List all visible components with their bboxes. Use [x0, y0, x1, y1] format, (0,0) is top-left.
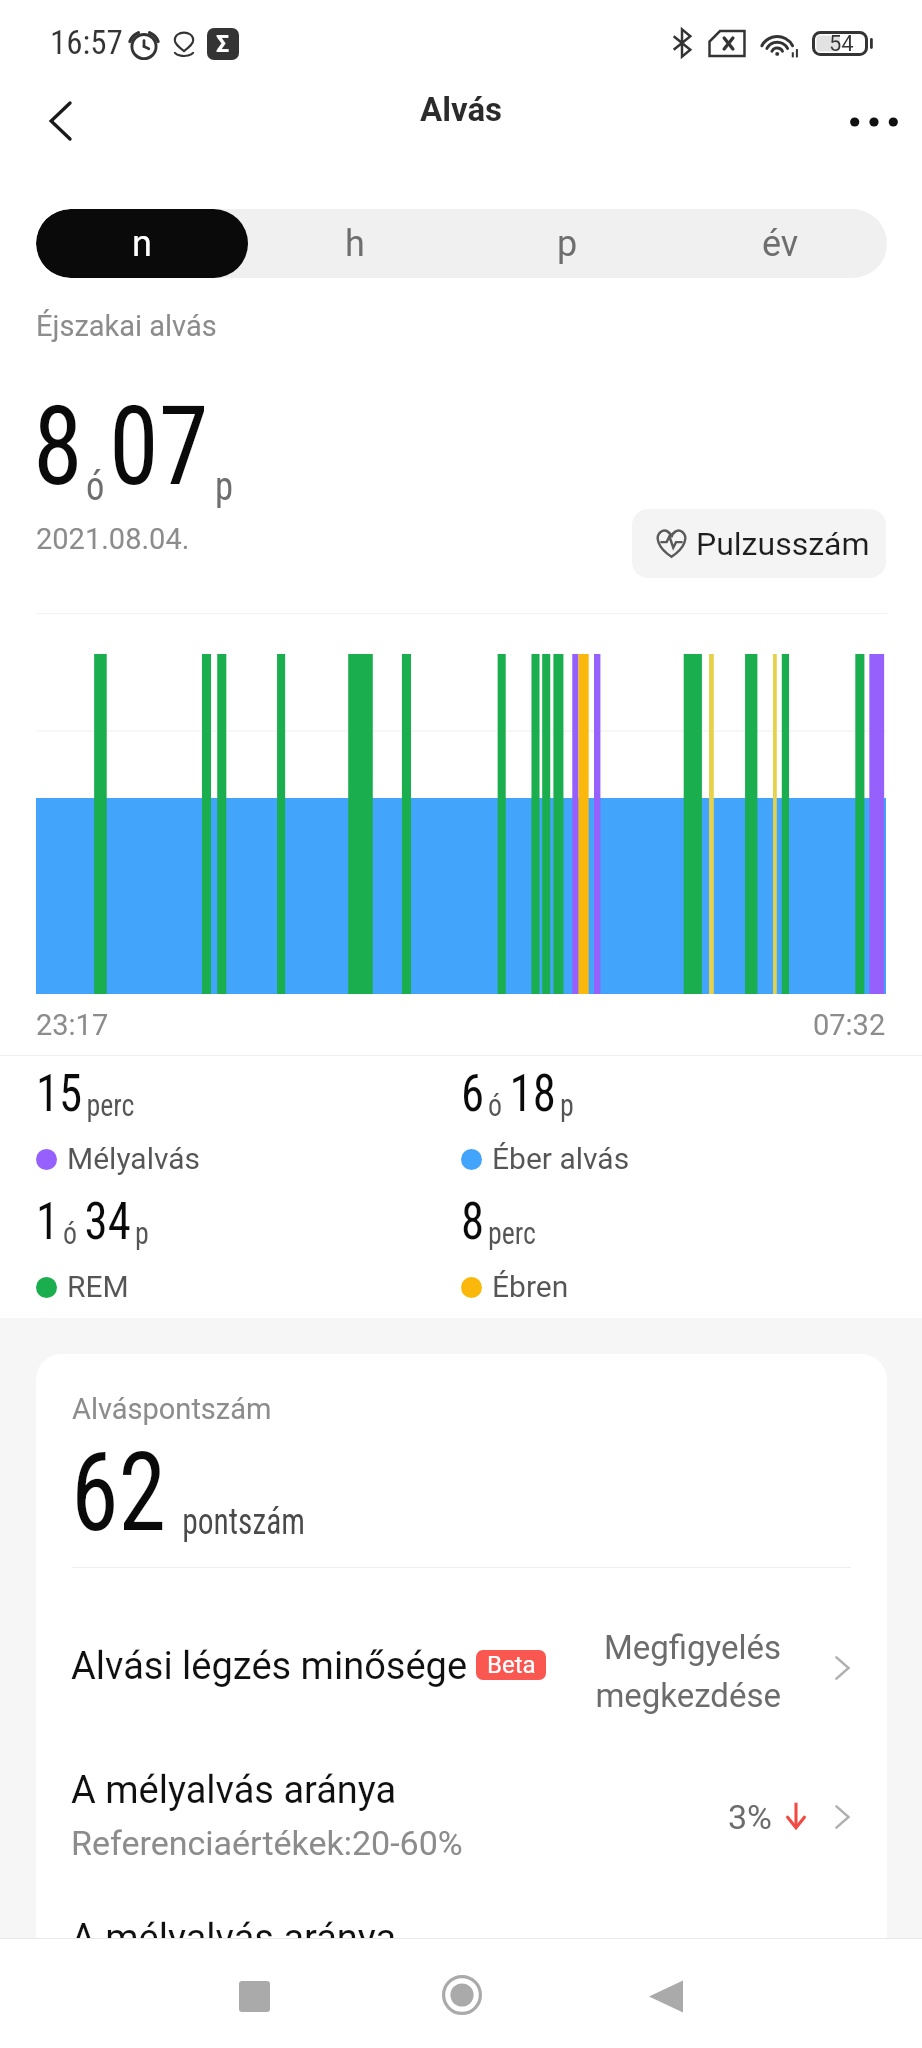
staticText: 34 — [85, 1191, 131, 1252]
staticText: 07:32 — [813, 1008, 886, 1042]
staticText: REM — [67, 1269, 129, 1304]
staticText: ó — [86, 463, 105, 510]
staticText: Ébren — [492, 1269, 569, 1304]
staticText: perc — [86, 1087, 135, 1123]
staticText: 15 — [36, 1063, 83, 1124]
staticText: p — [560, 1087, 574, 1123]
staticText: Éber alvás — [492, 1141, 630, 1176]
button[interactable] — [36, 1744, 887, 1909]
staticText: 16:57 — [50, 23, 123, 62]
staticText: 18 — [510, 1063, 556, 1124]
staticText: 3% — [728, 1797, 773, 1837]
button[interactable]: év — [674, 209, 887, 278]
button[interactable]: Back — [606, 1938, 726, 2048]
staticText: p — [557, 223, 578, 265]
staticText: A mélyalvás aránya — [71, 1916, 397, 1961]
button[interactable]: Recent apps — [194, 1938, 314, 2048]
staticText: Beta — [487, 1651, 536, 1679]
staticText: Σ — [216, 31, 230, 58]
staticText: h — [345, 223, 365, 265]
staticText: Megfigyelés megkezdése — [561, 1628, 781, 1715]
staticText: Alváspontszám — [72, 1392, 272, 1426]
button[interactable]: More options — [831, 78, 917, 164]
staticText: Éjszakai alvás — [36, 309, 217, 343]
button[interactable]: Back — [20, 78, 106, 164]
staticText: Alvási légzés minősége — [71, 1644, 468, 1689]
staticText: Pulzusszám — [696, 525, 870, 563]
staticText: Alvás — [420, 90, 503, 129]
staticText: A mélyalvás aránya — [71, 1768, 397, 1813]
staticText: 23:17 — [36, 1008, 109, 1042]
staticText: ó — [488, 1087, 502, 1123]
staticText: év — [762, 223, 799, 265]
staticText: n — [132, 223, 152, 265]
staticText: 54 — [829, 31, 854, 56]
button[interactable]: Pulzusszám — [632, 509, 886, 578]
staticText: 8 — [33, 382, 83, 511]
button[interactable]: h — [248, 209, 461, 278]
staticText: p — [135, 1215, 149, 1251]
staticText: Referenciaértékek:20-60% — [71, 1823, 463, 1863]
staticText: pontszám — [182, 1501, 305, 1543]
button[interactable] — [36, 1584, 887, 1744]
staticText: Mélyalvás — [67, 1141, 201, 1176]
staticText: 62 — [71, 1428, 166, 1557]
staticText: 8 — [461, 1191, 484, 1252]
button[interactable]: p — [461, 209, 674, 278]
staticText: 2021.08.04. — [36, 522, 190, 556]
staticText: 07 — [109, 382, 209, 511]
staticText: p — [215, 463, 233, 510]
button[interactable]: n — [36, 209, 248, 278]
staticText: 6 — [461, 1063, 484, 1124]
staticText: 1 — [36, 1191, 59, 1252]
staticText: ó — [63, 1215, 77, 1251]
button[interactable]: Home — [402, 1938, 522, 2048]
staticText: perc — [488, 1215, 537, 1251]
